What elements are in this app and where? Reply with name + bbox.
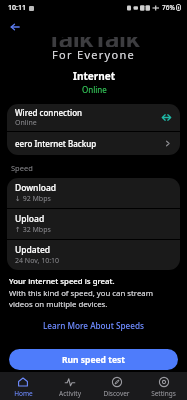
button[interactable]: eero Internet Backup: [7, 132, 180, 155]
button[interactable]: Discover: [93, 372, 140, 400]
staticText: Updated: [15, 244, 51, 256]
staticText: Online: [82, 84, 107, 95]
button[interactable]: Learn More About Speeds: [9, 319, 178, 331]
staticText: Speed: [11, 163, 33, 173]
staticText: Internet: [73, 69, 115, 83]
staticText: Home: [14, 389, 33, 398]
button[interactable]: Updated: [7, 240, 180, 270]
staticText: Discover: [103, 389, 130, 398]
staticText: For Everyone: [52, 47, 136, 62]
staticText: Download: [15, 182, 57, 194]
staticText: 24 Nov, 10:10: [15, 256, 60, 266]
staticText: ↑ 32 Mbps: [15, 225, 51, 235]
button[interactable]: Wired connection: [7, 104, 180, 131]
staticText: 76%: [162, 3, 175, 12]
staticText: eero Internet Backup: [15, 138, 163, 149]
staticText: Upload: [15, 213, 45, 225]
button[interactable]: Home: [0, 372, 46, 400]
button[interactable]: Download: [7, 178, 180, 208]
staticText: Settings: [151, 389, 176, 398]
staticText: Your internet speed is great.: [9, 276, 115, 287]
button[interactable]: Upload: [7, 209, 180, 239]
staticText: With this kind of speed, you can stream …: [9, 288, 178, 310]
staticText: ↓ 92 Mbps: [15, 194, 51, 204]
button[interactable]: Activity: [46, 372, 93, 400]
staticText: Activity: [59, 389, 81, 398]
staticText: Learn More About Speeds: [43, 320, 145, 331]
staticText: Run speed test: [62, 354, 125, 366]
button[interactable]: Run speed test: [9, 349, 178, 370]
staticText: TalkTalk: [47, 37, 140, 47]
button[interactable]: Settings: [140, 372, 187, 400]
staticText: Wired connection: [15, 107, 83, 118]
staticText: Online: [15, 118, 37, 128]
staticText: 10:11: [8, 3, 26, 13]
button[interactable]: Back: [6, 18, 24, 36]
